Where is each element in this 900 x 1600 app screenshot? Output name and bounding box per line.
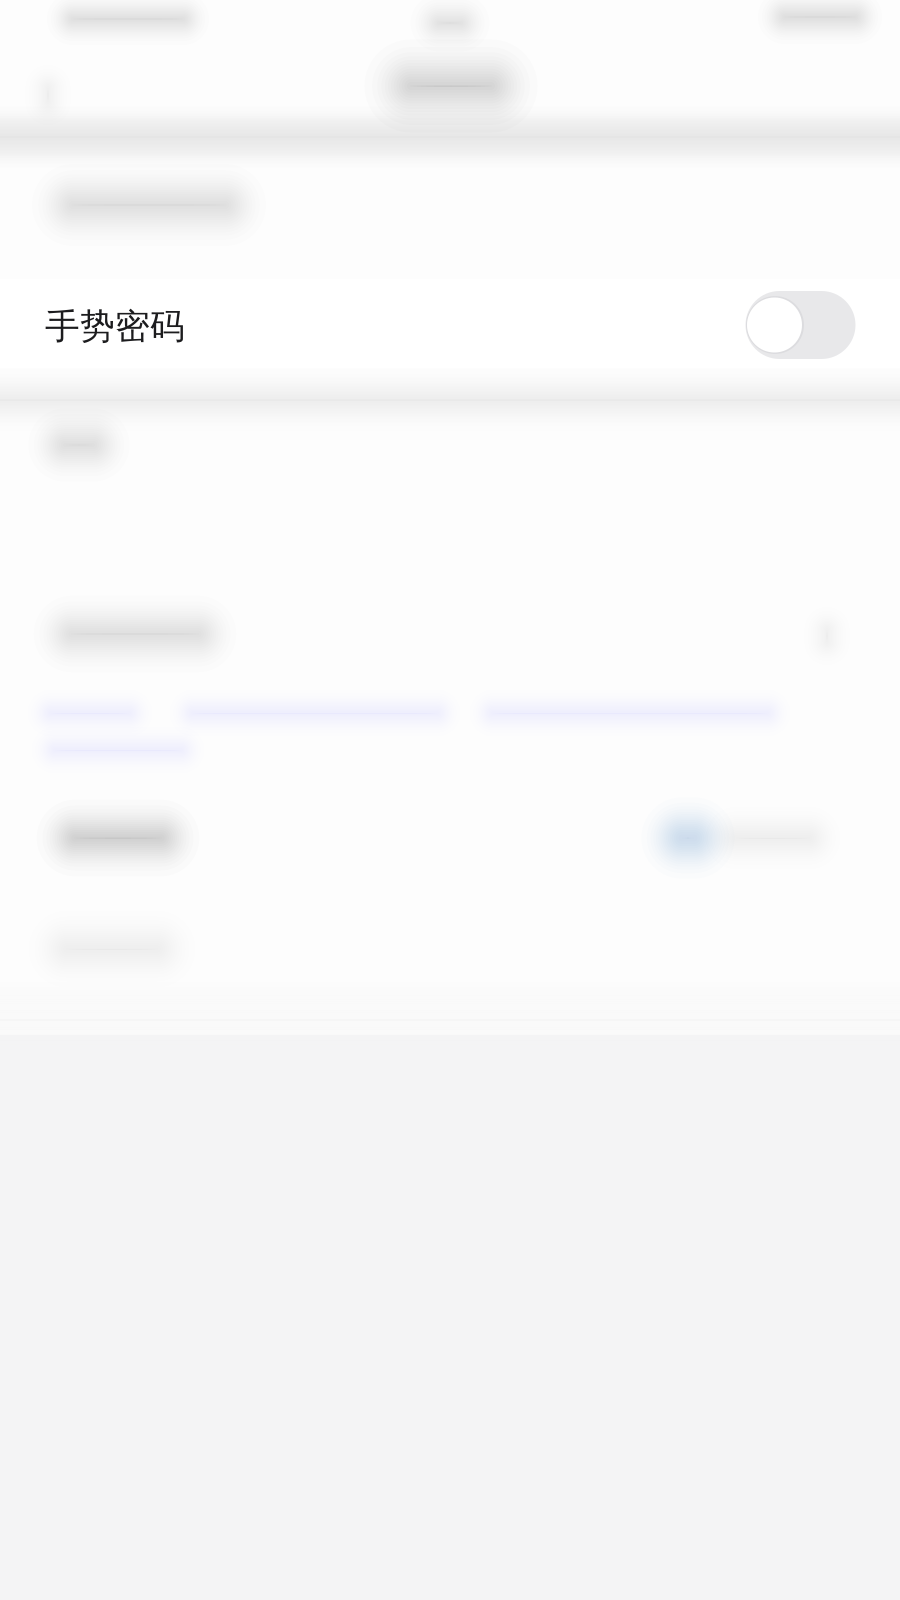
staticText: 手势密码 [45,305,185,348]
button[interactable]: 手势密码 [0,279,900,368]
